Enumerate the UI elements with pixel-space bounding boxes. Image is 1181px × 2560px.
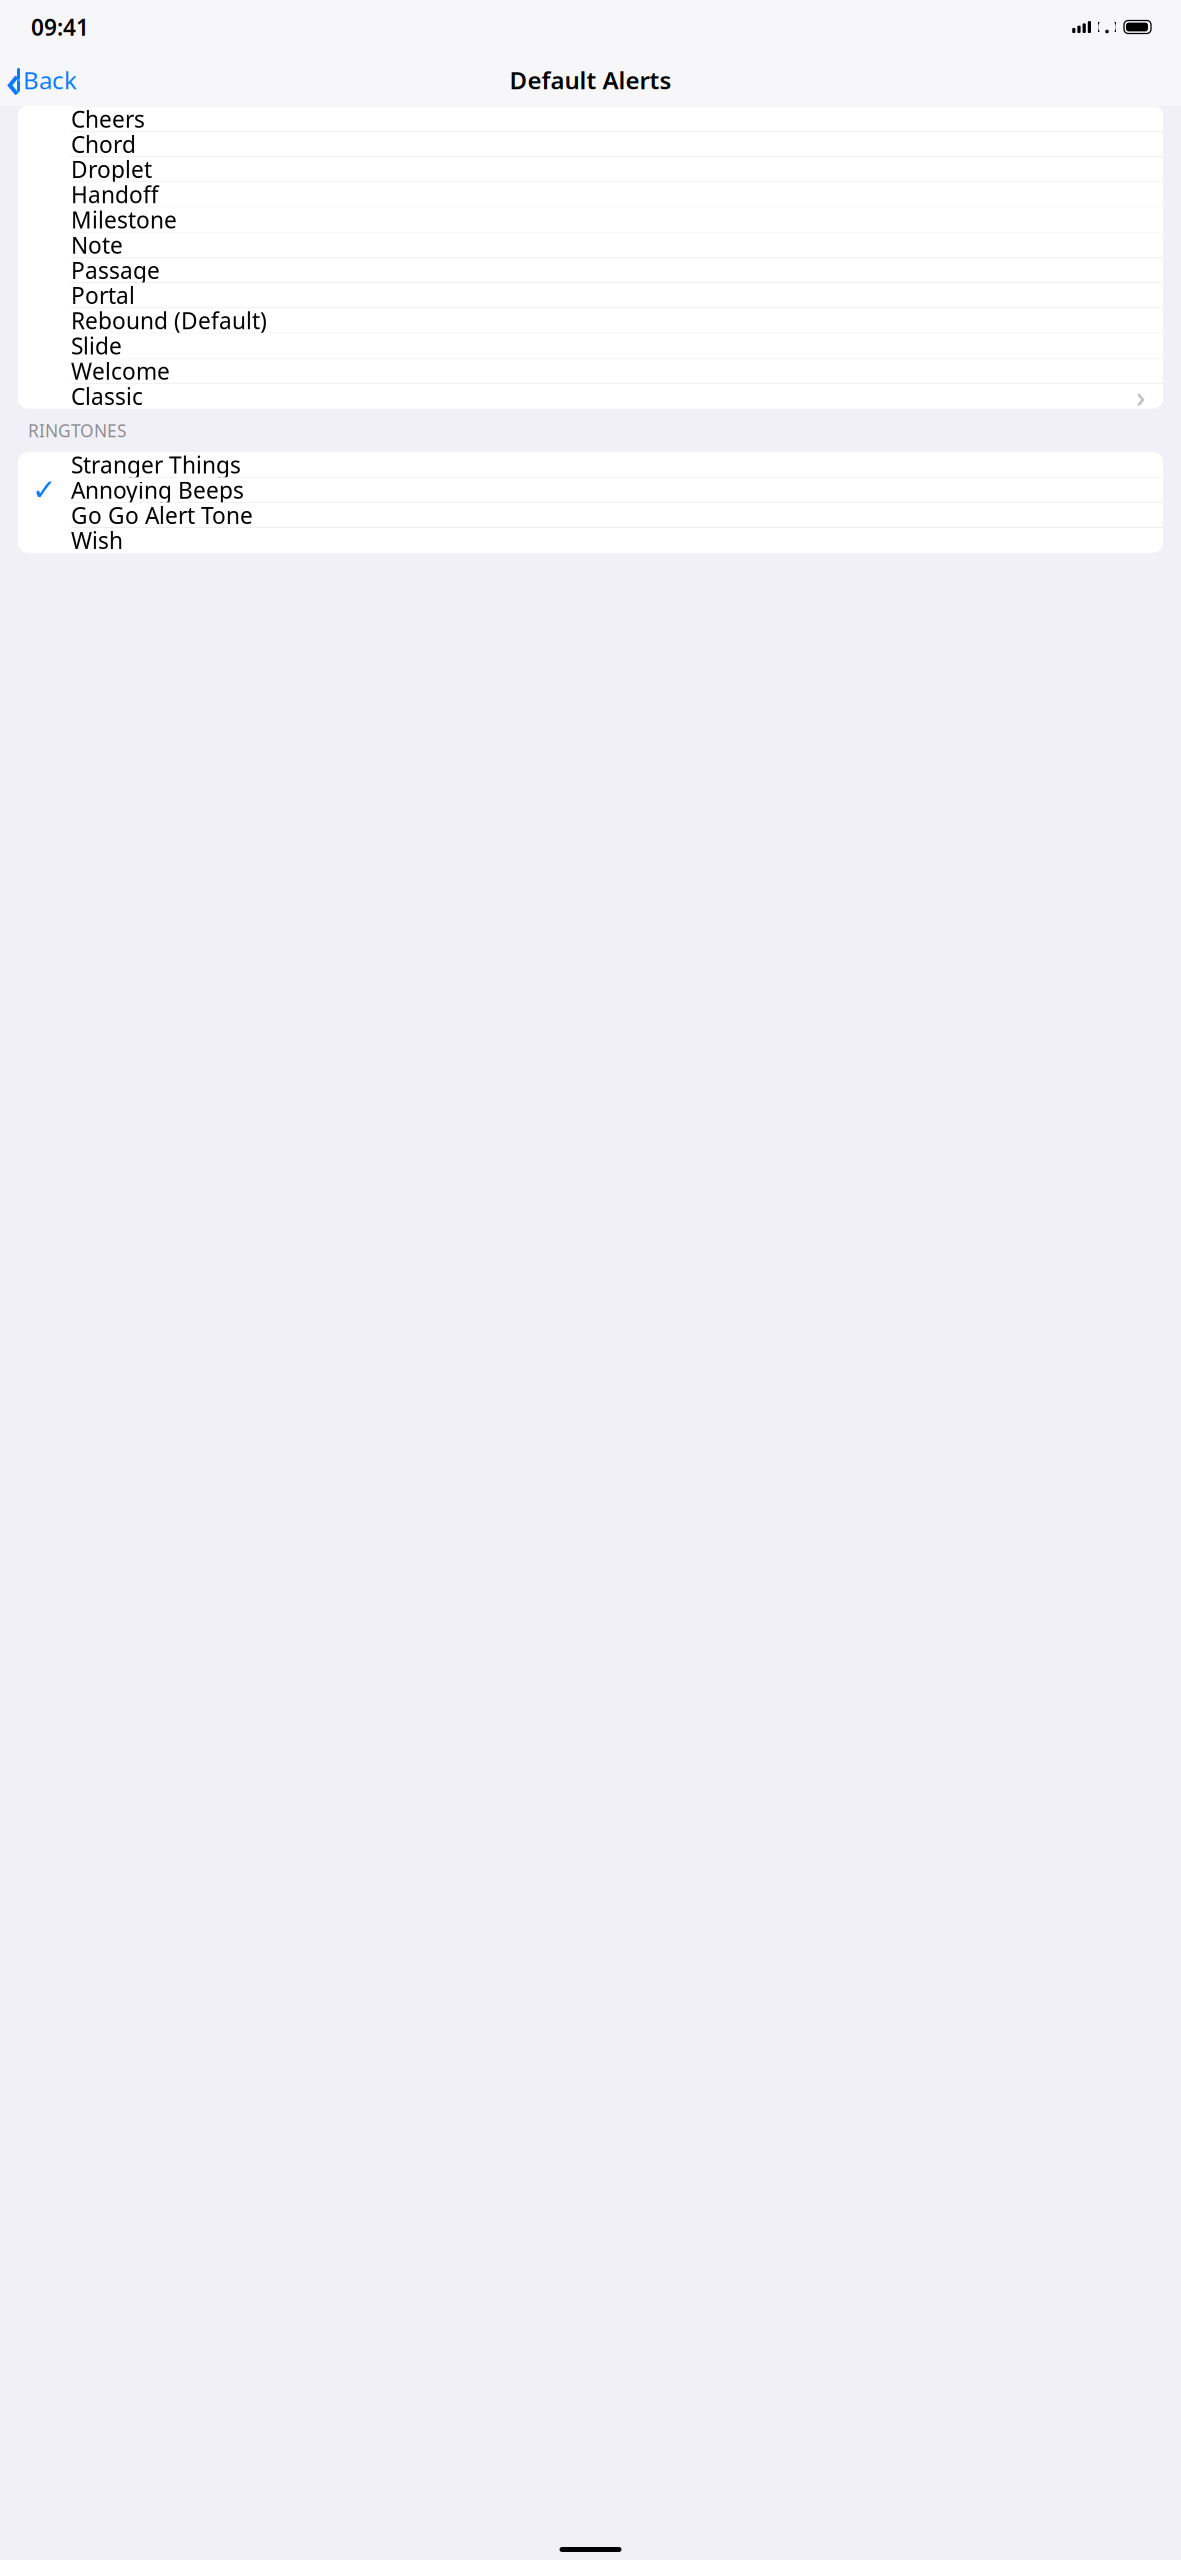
staticText: Welcome [71, 356, 170, 386]
button[interactable]: Handoff [18, 182, 1163, 207]
staticText: 09:41 [31, 12, 89, 42]
button[interactable]: Slide [18, 333, 1163, 358]
button[interactable]: Welcome [18, 359, 1163, 383]
staticText: ‹ [5, 50, 20, 110]
button[interactable]: Chord [18, 132, 1163, 156]
button[interactable]: Note [18, 233, 1163, 257]
button[interactable]: Wish [18, 528, 1163, 553]
staticText: Handoff [71, 179, 159, 209]
staticText: Default Alerts [509, 64, 671, 96]
button[interactable]: Passage [18, 258, 1163, 282]
staticText: Portal [71, 280, 135, 310]
button[interactable]: Go Go Alert Tone [18, 503, 1163, 527]
staticText: Back [23, 64, 77, 96]
button[interactable]: Rebound (Default) [18, 308, 1163, 333]
staticText: Classic [71, 381, 143, 411]
staticText: Stranger Things [71, 450, 241, 480]
button[interactable]: Cheers [18, 107, 1163, 131]
button[interactable]: Classic [18, 384, 1163, 408]
button[interactable]: Portal [18, 283, 1163, 308]
staticText: RINGTONES [28, 419, 127, 442]
button[interactable]: Droplet [18, 157, 1163, 182]
staticText: Rebound (Default) [71, 305, 267, 335]
staticText: Annoying Beeps [71, 475, 244, 505]
staticText: Go Go Alert Tone [71, 500, 253, 530]
staticText: Note [71, 230, 123, 260]
button[interactable]: ‹ [0, 57, 77, 103]
button[interactable]: Milestone [18, 207, 1163, 232]
button[interactable]: Stranger Things [18, 452, 1163, 477]
staticText: Wish [71, 525, 123, 555]
staticText: ✓ [32, 473, 57, 507]
staticText: Cheers [71, 104, 145, 134]
staticText: Milestone [71, 205, 177, 235]
button[interactable]: ✓ [18, 478, 1163, 502]
staticText: Passage [71, 255, 160, 285]
staticText: › [1136, 377, 1146, 416]
staticText: Slide [71, 331, 122, 361]
staticText: Droplet [71, 154, 152, 184]
staticText: Chord [71, 129, 136, 159]
